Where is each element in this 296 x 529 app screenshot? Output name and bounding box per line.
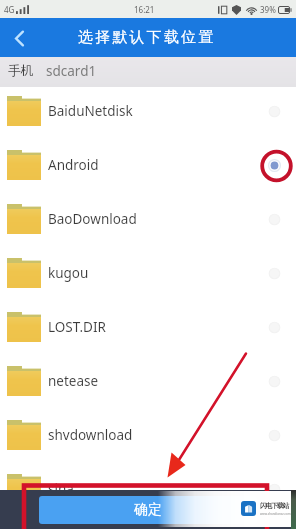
staticText: 4G xyxy=(4,4,15,15)
button[interactable]: Android xyxy=(0,138,296,192)
button[interactable]: Select Android xyxy=(256,147,292,183)
button[interactable]: 手机 xyxy=(7,63,35,79)
button[interactable]: LOST.DIR xyxy=(0,300,296,354)
button[interactable]: sina xyxy=(0,462,296,516)
staticText: netease xyxy=(48,372,256,390)
button[interactable]: BaoDownload xyxy=(0,192,296,246)
button[interactable]: BaiduNetdisk xyxy=(0,84,296,138)
button[interactable]: Back xyxy=(0,19,38,57)
staticText: kugou xyxy=(48,264,256,282)
button[interactable]: 确定 xyxy=(39,496,257,524)
button[interactable]: Select sina xyxy=(256,471,292,507)
button[interactable]: sdcard1 xyxy=(45,62,98,80)
button[interactable]: netease xyxy=(0,354,296,408)
staticText: 选择默认下载位置 xyxy=(78,28,216,47)
staticText: shvdownload xyxy=(48,426,256,444)
staticText: sdcard1 xyxy=(46,62,97,80)
staticText: 手机 xyxy=(8,63,34,79)
staticText: 16:21 xyxy=(134,4,155,15)
staticText: 确定 xyxy=(134,501,162,519)
staticText: www.shandianxz.com xyxy=(260,512,291,516)
staticText: BaoDownload xyxy=(48,210,256,228)
staticText: sina xyxy=(48,480,256,498)
staticText: 39% xyxy=(260,4,276,15)
staticText: BaiduNetdisk xyxy=(48,102,256,120)
staticText: Android xyxy=(48,156,256,174)
staticText: 闪电下载站 xyxy=(260,501,288,510)
button[interactable]: kugou xyxy=(0,246,296,300)
staticText: LOST.DIR xyxy=(48,318,256,336)
button[interactable]: shvdownload xyxy=(0,408,296,462)
